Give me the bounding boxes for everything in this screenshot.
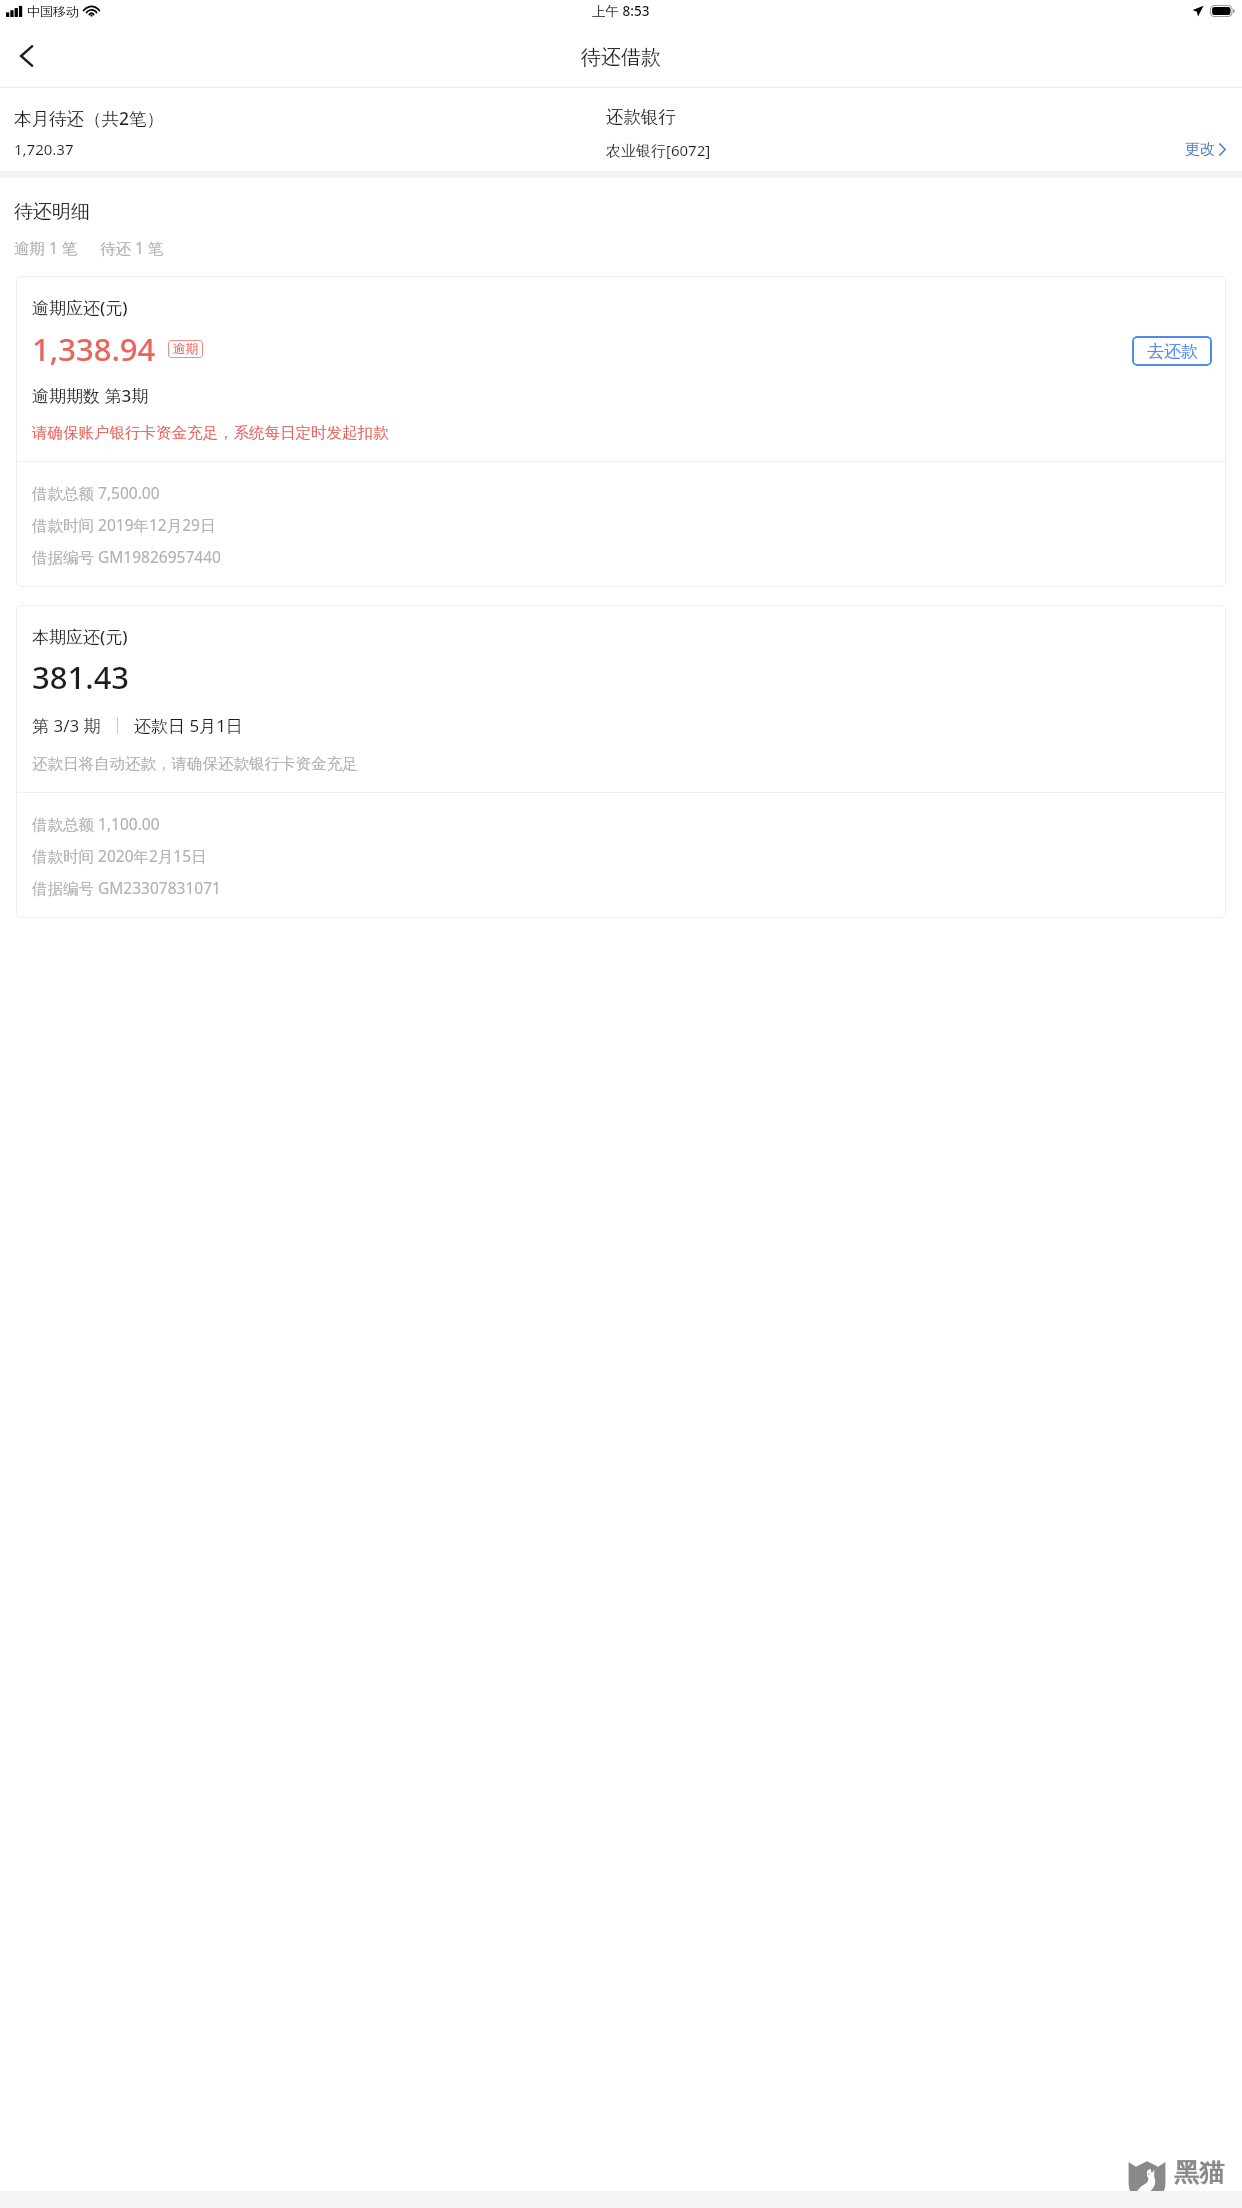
staticText: 借据编号 GM19826957440	[32, 546, 221, 567]
staticText: 更改	[1185, 140, 1215, 159]
button[interactable]: 待还 1 笔	[100, 237, 164, 258]
staticText: 逾期	[173, 341, 198, 357]
button[interactable]: 本期应还(元)	[16, 605, 1226, 918]
staticText: 借款总额 7,500.00	[32, 482, 160, 503]
staticText: 待还明细	[14, 200, 90, 224]
staticText: 上午 8:53	[592, 2, 650, 20]
staticText: 逾期期数 第3期	[32, 384, 149, 407]
button[interactable]: 去还款	[1132, 336, 1212, 366]
staticText: 本期应还(元)	[32, 625, 128, 648]
button[interactable]: 更改	[1183, 137, 1228, 162]
staticText: 中国移动	[27, 3, 79, 19]
staticText: 还款银行	[606, 106, 676, 128]
staticText: 本月待还（共2笔）	[14, 106, 165, 130]
staticText: 请确保账户银行卡资金充足，系统每日定时发起扣款	[32, 423, 389, 443]
staticText: 第 3/3 期	[32, 714, 101, 737]
staticText: 去还款	[1147, 341, 1198, 362]
staticText: 381.43	[32, 656, 130, 698]
staticText: 借据编号 GM23307831071	[32, 877, 221, 898]
staticText: 农业银行[6072]	[606, 140, 711, 160]
staticText: 待还 1 笔	[100, 237, 164, 258]
staticText: 还款日 5月1日	[134, 714, 243, 737]
staticText: 借款时间 2019年12月29日	[32, 514, 216, 535]
staticText: 借款时间 2020年2月15日	[32, 845, 207, 866]
staticText: 1,338.94	[32, 328, 156, 370]
staticText: 待还借款	[581, 45, 661, 67]
button[interactable]: 返回	[6, 45, 46, 67]
staticText: 1,720.37	[14, 139, 74, 159]
button[interactable]: 逾期 1 笔	[14, 237, 78, 258]
staticText: 还款日将自动还款，请确保还款银行卡资金充足	[32, 754, 358, 774]
staticText: 借款总额 1,100.00	[32, 813, 160, 834]
staticText: 逾期应还(元)	[32, 296, 128, 319]
button[interactable]: 逾期应还(元)	[16, 276, 1226, 587]
staticText: 黑猫	[1174, 2157, 1224, 2188]
staticText: 逾期 1 笔	[14, 237, 78, 258]
staticText: BLACK CAT	[1174, 2188, 1238, 2204]
